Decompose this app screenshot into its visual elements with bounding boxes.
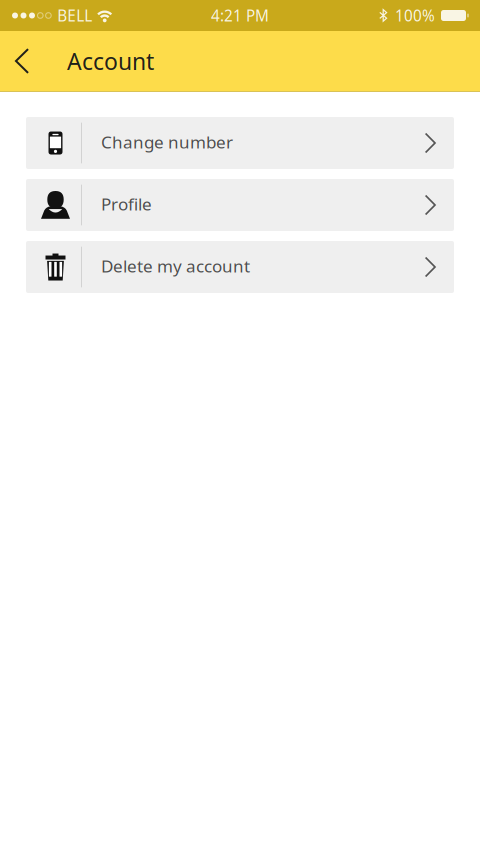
staticText: Change number xyxy=(101,130,233,154)
staticText: 4:21 PM xyxy=(211,5,269,26)
staticText: BELL xyxy=(57,5,92,26)
staticText: Profile xyxy=(101,192,152,216)
button[interactable]: Change number xyxy=(26,117,454,169)
button[interactable]: Delete my account xyxy=(26,241,454,293)
staticText: Delete my account xyxy=(101,254,250,278)
staticText: 100% xyxy=(395,5,435,26)
button[interactable]: Profile xyxy=(26,179,454,231)
staticText: Account xyxy=(67,45,154,77)
button[interactable]: Back xyxy=(0,30,44,91)
